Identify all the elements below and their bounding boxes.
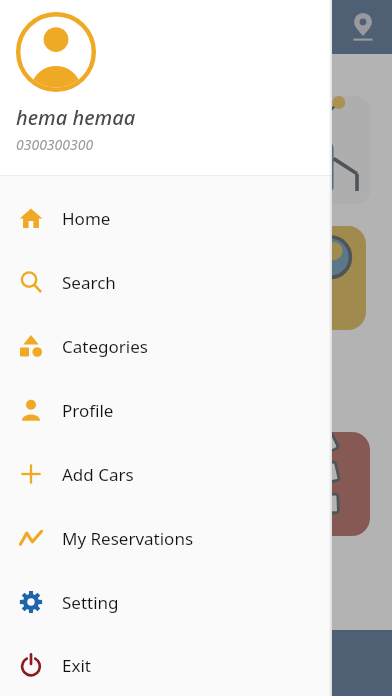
staticText: Search xyxy=(62,271,116,294)
button[interactable]: Location xyxy=(348,12,378,42)
staticText: Profile xyxy=(62,399,114,422)
staticText: hema hemaa xyxy=(16,104,136,131)
staticText: Home xyxy=(62,207,111,230)
staticText: Setting xyxy=(62,591,119,614)
button[interactable]: Setting xyxy=(0,570,332,634)
staticText: Categories xyxy=(62,335,148,358)
button[interactable]: Profile xyxy=(0,378,332,442)
staticText: Exit xyxy=(62,654,91,677)
button[interactable]: Search xyxy=(0,250,332,314)
button[interactable]: Exit xyxy=(0,634,332,696)
staticText: 0300300300 xyxy=(16,135,94,154)
button[interactable]: Add Cars xyxy=(0,442,332,506)
staticText: My Reservations xyxy=(62,527,194,550)
button[interactable]: Categories xyxy=(0,314,332,378)
button[interactable]: Home xyxy=(0,186,332,250)
button[interactable]: My Reservations xyxy=(0,506,332,570)
staticText: Add Cars xyxy=(62,463,134,486)
